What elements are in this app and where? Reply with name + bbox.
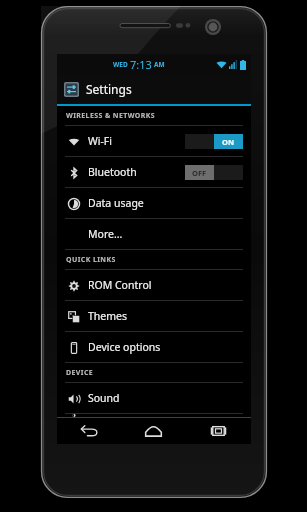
button[interactable]: Wi-Fi on bbox=[185, 134, 243, 149]
staticText: More… bbox=[88, 227, 123, 241]
staticText: DEVICE bbox=[66, 368, 94, 378]
button[interactable]: Recent apps bbox=[186, 418, 251, 444]
button[interactable]: Wi-Fi bbox=[57, 126, 251, 156]
staticText: Device options bbox=[88, 340, 161, 354]
button[interactable]: Sound bbox=[57, 383, 251, 413]
button[interactable]: Settings bbox=[57, 74, 251, 104]
button[interactable]: Display bbox=[57, 414, 251, 417]
staticText: ROM Control bbox=[88, 278, 152, 292]
staticText: AM bbox=[154, 60, 165, 69]
button[interactable]: Themes bbox=[57, 301, 251, 331]
staticText: Sound bbox=[88, 391, 120, 405]
button[interactable]: Back bbox=[57, 418, 121, 444]
button[interactable]: Device options bbox=[57, 332, 251, 362]
staticText: QUICK LINKS bbox=[66, 255, 116, 265]
staticText: WIRELESS & NETWORKS bbox=[66, 111, 156, 121]
button[interactable]: Bluetooth bbox=[57, 157, 251, 187]
staticText: Settings bbox=[86, 81, 132, 97]
button[interactable]: ROM Control bbox=[57, 270, 251, 300]
staticText: Themes bbox=[88, 309, 128, 323]
staticText: Bluetooth bbox=[88, 165, 137, 179]
button[interactable]: Data usage bbox=[57, 188, 251, 218]
staticText: Data usage bbox=[88, 196, 144, 210]
button[interactable]: Bluetooth off bbox=[185, 165, 243, 180]
staticText: OFF bbox=[192, 168, 207, 178]
staticText: ON bbox=[222, 137, 235, 147]
button[interactable]: Home bbox=[121, 418, 186, 444]
button[interactable]: More… bbox=[57, 219, 251, 249]
staticText: 7:13 bbox=[130, 57, 152, 72]
staticText: Wi-Fi bbox=[88, 134, 113, 148]
staticText: WED bbox=[113, 60, 128, 69]
